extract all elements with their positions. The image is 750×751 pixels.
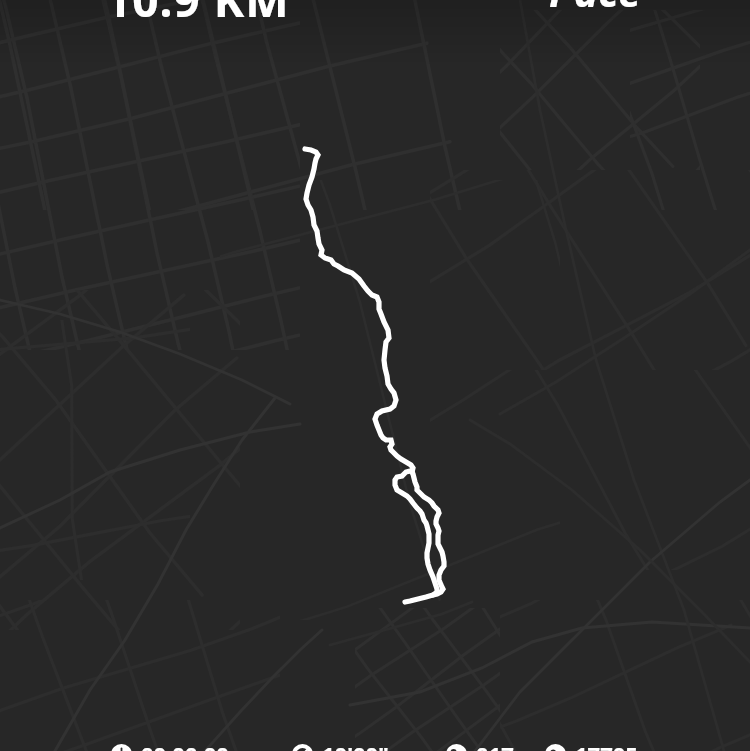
staticText: Pace [549, 0, 641, 19]
staticText: 00:00:00 [141, 739, 229, 751]
staticText: 017 [476, 739, 514, 751]
button[interactable]: 17705 [545, 739, 638, 751]
staticText: 10'00" [322, 739, 389, 751]
staticText: 17705 [575, 739, 638, 751]
button[interactable]: Route map [0, 0, 750, 751]
staticText: 10.9 KM [105, 0, 290, 31]
button[interactable]: 00:00:00 [111, 739, 229, 751]
button[interactable]: 10'00" [292, 739, 389, 751]
button[interactable]: 017 [446, 739, 514, 751]
